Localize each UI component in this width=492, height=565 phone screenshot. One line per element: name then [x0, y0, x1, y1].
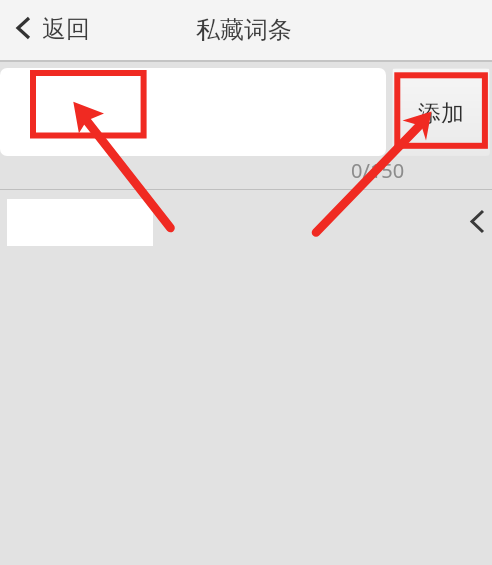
button[interactable]: Back — [16, 8, 90, 52]
staticText: 添加 — [418, 99, 464, 128]
staticText: 0/150 — [351, 157, 405, 184]
staticText: 私藏词条 — [196, 15, 292, 45]
button[interactable] — [0, 68, 386, 156]
button[interactable]: More — [0, 190, 492, 258]
staticText: 返回 — [42, 14, 90, 44]
button[interactable]: More — [459, 203, 492, 239]
button[interactable]: 添加 — [393, 69, 489, 155]
